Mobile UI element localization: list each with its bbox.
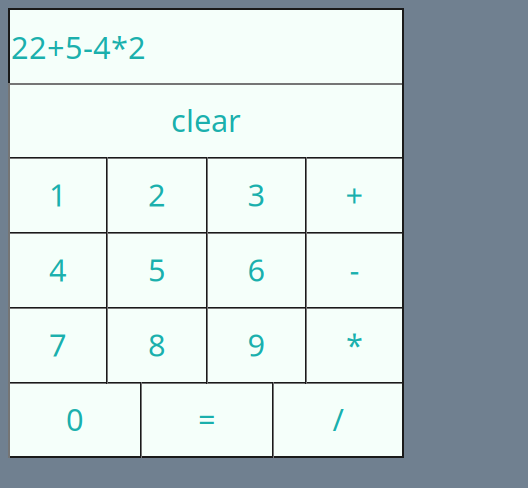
staticText: = xyxy=(198,398,216,440)
button[interactable]: = xyxy=(142,384,272,456)
button[interactable]: + xyxy=(307,159,402,232)
staticText: 3 xyxy=(247,174,265,215)
button[interactable]: 5 xyxy=(108,234,206,307)
button[interactable]: 3 xyxy=(208,159,305,232)
staticText: clear xyxy=(171,99,241,141)
button[interactable]: 7 xyxy=(10,309,106,382)
button[interactable]: clear xyxy=(10,85,402,157)
button[interactable]: - xyxy=(307,234,402,307)
staticText: 22+5-4*2 xyxy=(11,26,146,68)
staticText: 6 xyxy=(247,249,265,290)
button[interactable]: 6 xyxy=(208,234,305,307)
staticText: 8 xyxy=(148,324,166,365)
button[interactable]: * xyxy=(307,309,402,382)
button[interactable]: 9 xyxy=(208,309,305,382)
button[interactable]: 4 xyxy=(10,234,106,307)
staticText: 1 xyxy=(49,174,67,215)
staticText: 5 xyxy=(148,249,166,290)
staticText: 2 xyxy=(148,174,166,215)
button[interactable]: 0 xyxy=(10,384,140,456)
staticText: / xyxy=(332,398,343,440)
staticText: - xyxy=(349,249,359,290)
staticText: 4 xyxy=(49,249,67,290)
staticText: 9 xyxy=(247,324,265,365)
button[interactable]: 8 xyxy=(108,309,206,382)
button[interactable]: 1 xyxy=(10,159,106,232)
staticText: + xyxy=(345,174,363,215)
staticText: 0 xyxy=(66,398,84,440)
staticText: * xyxy=(346,324,363,365)
button[interactable]: 2 xyxy=(108,159,206,232)
staticText: 7 xyxy=(49,324,67,365)
button[interactable]: / xyxy=(274,384,402,456)
